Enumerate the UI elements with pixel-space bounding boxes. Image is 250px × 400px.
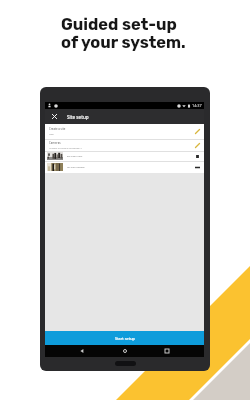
staticText: Site setup bbox=[67, 114, 89, 120]
button[interactable]: Recent apps bbox=[161, 345, 173, 357]
button[interactable]: Home bbox=[119, 345, 131, 357]
button[interactable]: Int-Cam Hallway bbox=[45, 162, 204, 173]
button[interactable]: Create a site bbox=[45, 124, 204, 139]
button[interactable]: Back bbox=[76, 345, 88, 357]
button[interactable]: Edit bbox=[194, 142, 201, 149]
staticText: Ext-Cam Front bbox=[67, 155, 83, 158]
staticText: Cameras bbox=[49, 141, 61, 145]
button[interactable]: Close bbox=[45, 109, 63, 124]
button[interactable]: Start setup bbox=[45, 331, 204, 345]
button[interactable]: Camera status bbox=[194, 153, 201, 160]
staticText: Create a site bbox=[49, 127, 66, 131]
staticText: Start setup bbox=[115, 336, 135, 341]
staticText: Int-Cam Hallway bbox=[67, 166, 85, 169]
staticText: Guided set-up of your system. bbox=[61, 15, 186, 52]
staticText: Main bbox=[49, 133, 54, 136]
staticText: Number of cameras connected: 2 bbox=[49, 147, 82, 150]
button[interactable]: Cameras bbox=[45, 140, 204, 151]
button[interactable]: Ext-Cam Front bbox=[45, 152, 204, 161]
staticText: 14:37 bbox=[192, 103, 202, 108]
button[interactable]: Edit bbox=[194, 128, 201, 135]
button[interactable]: Camera status bbox=[194, 164, 201, 171]
